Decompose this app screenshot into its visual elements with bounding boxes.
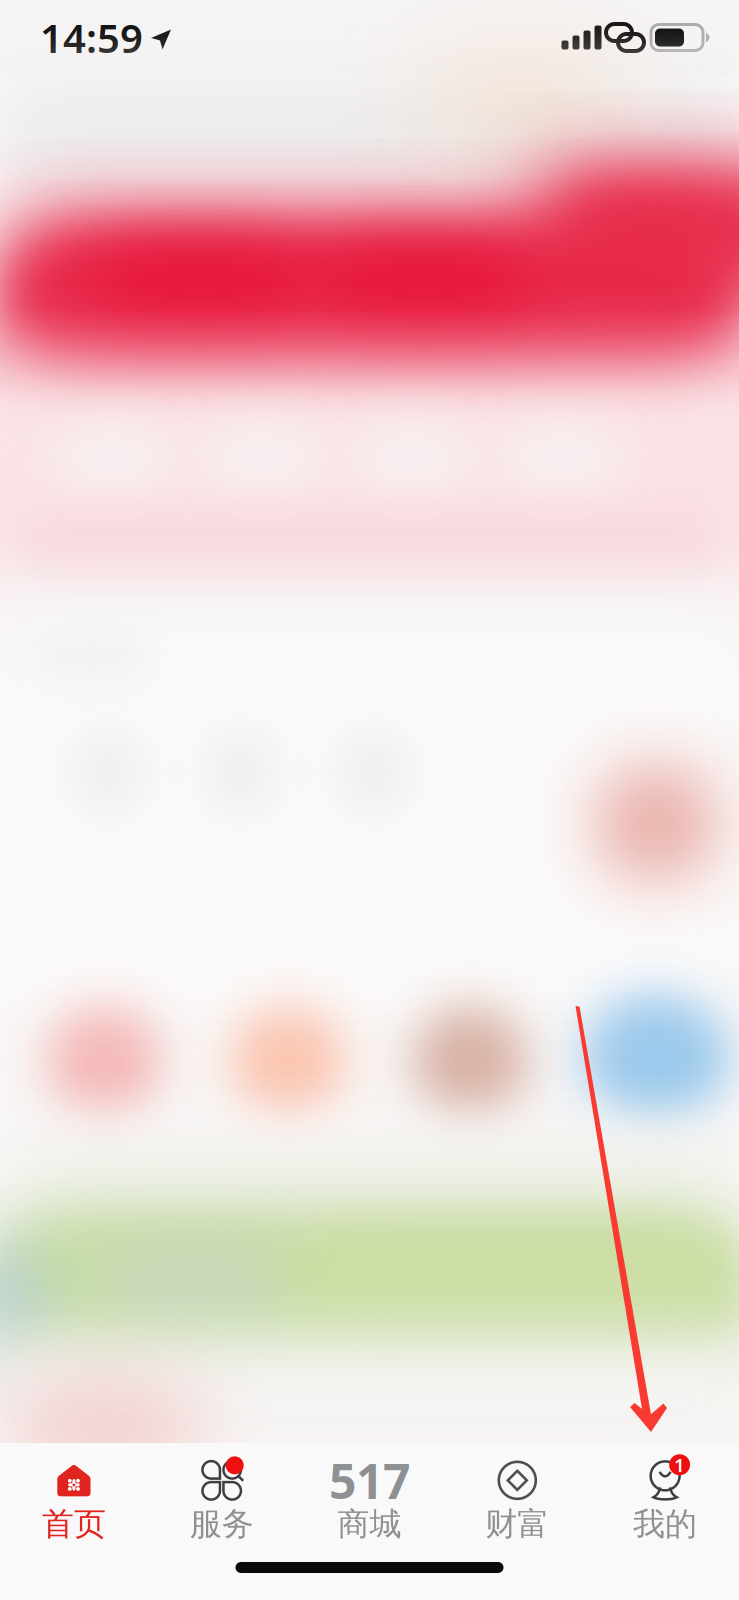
staticText: 我的	[633, 1504, 697, 1544]
staticText: 财富	[485, 1504, 549, 1544]
staticText: 517	[329, 1448, 410, 1512]
staticText: 14:59	[40, 11, 143, 64]
staticText: 首页	[42, 1504, 106, 1544]
button[interactable]: 服务	[148, 1448, 296, 1552]
staticText: 服务	[190, 1504, 254, 1544]
button[interactable]: 1	[591, 1448, 739, 1552]
button[interactable]: 517	[296, 1448, 443, 1552]
staticText: 1	[674, 1452, 685, 1477]
staticText: 商城	[337, 1504, 401, 1544]
button[interactable]: 财富	[443, 1448, 591, 1552]
button[interactable]: 首页	[0, 1448, 148, 1552]
